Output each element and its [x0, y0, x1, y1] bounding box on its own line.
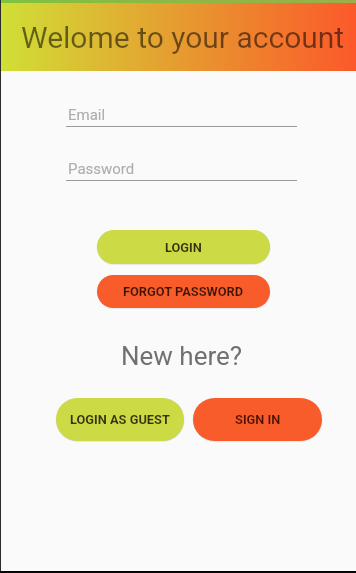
- button[interactable]: Password: [66, 152, 297, 180]
- staticText: LOGIN AS GUEST: [70, 412, 170, 427]
- staticText: Welome to your account: [21, 20, 345, 55]
- button[interactable]: LOGIN AS GUEST: [56, 398, 184, 441]
- staticText: New here?: [121, 341, 243, 371]
- button[interactable]: Email: [66, 98, 297, 126]
- button[interactable]: SIGN IN: [193, 398, 322, 441]
- staticText: LOGIN: [165, 240, 202, 255]
- button[interactable]: LOGIN: [97, 230, 270, 264]
- staticText: SIGN IN: [235, 412, 281, 427]
- staticText: Password: [68, 160, 135, 178]
- staticText: FORGOT PASSWORD: [123, 284, 244, 299]
- button[interactable]: FORGOT PASSWORD: [97, 275, 270, 308]
- staticText: Email: [68, 106, 106, 124]
